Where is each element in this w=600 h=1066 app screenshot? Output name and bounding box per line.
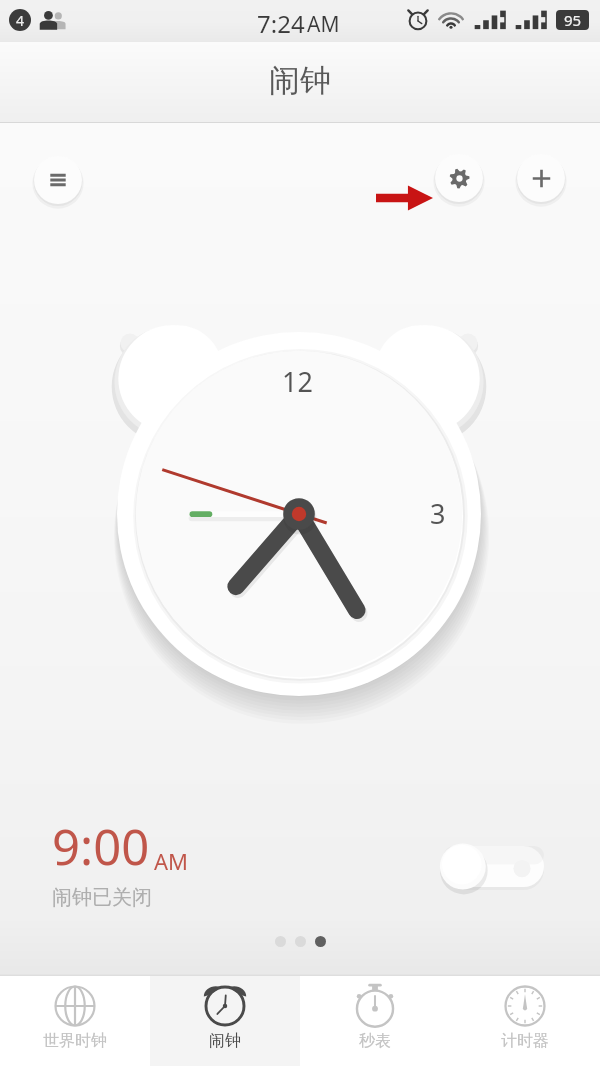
staticText: 闹钟 — [209, 1031, 241, 1051]
button[interactable]: Settings — [435, 154, 483, 202]
button[interactable]: Alarm on off toggle — [438, 840, 550, 894]
button[interactable]: Menu — [34, 156, 82, 204]
staticText: 秒表 — [359, 1031, 391, 1051]
staticText: 4 — [16, 11, 25, 30]
staticText: 3 — [430, 495, 446, 532]
button[interactable]: 秒表 — [300, 976, 450, 1066]
staticText: AM — [154, 846, 189, 876]
button[interactable]: Add alarm — [517, 154, 565, 202]
button[interactable]: 闹钟 — [150, 976, 300, 1066]
staticText: 闹钟已关闭 — [52, 885, 152, 910]
staticText: 闹钟 — [269, 61, 331, 100]
staticText: 7:24 — [257, 7, 305, 40]
staticText: 95 — [564, 10, 582, 30]
button[interactable]: 计时器 — [450, 976, 600, 1066]
staticText: AM — [307, 10, 340, 39]
button[interactable]: 世界时钟 — [0, 976, 150, 1066]
staticText: 9:00 — [52, 813, 150, 880]
staticText: 世界时钟 — [43, 1031, 107, 1051]
staticText: 计时器 — [501, 1031, 549, 1051]
staticText: 12 — [282, 363, 313, 400]
